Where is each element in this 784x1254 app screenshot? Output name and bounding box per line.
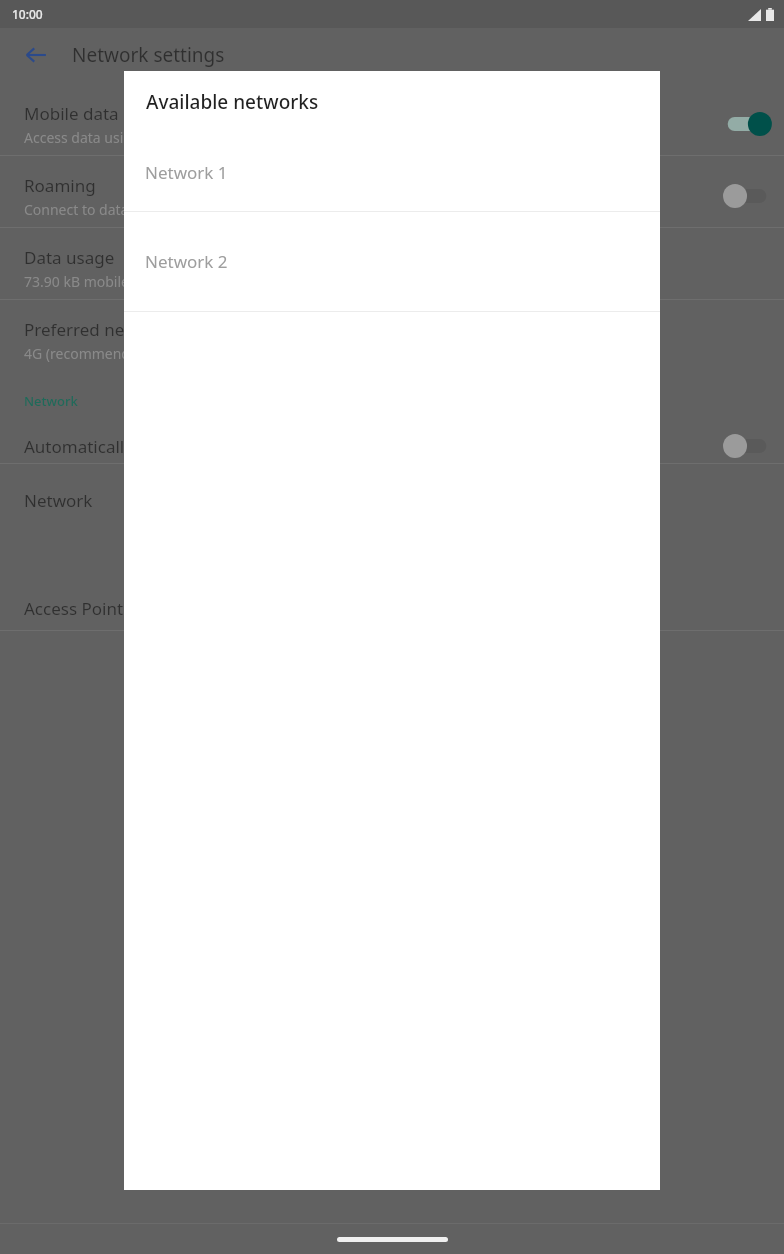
staticText: Connect to data services when roaming: [24, 200, 284, 219]
staticText: Network: [24, 392, 78, 410]
button[interactable]: Access Point Names: [0, 586, 784, 630]
button[interactable]: Network 2: [124, 212, 660, 311]
staticText: Preferred network type: [24, 318, 210, 341]
button[interactable]: Mobile data: [0, 96, 784, 152]
staticText: Available networks: [146, 89, 319, 115]
staticText: Network: [24, 489, 93, 512]
staticText: Data usage: [24, 246, 115, 269]
staticText: 4G (recommended): [24, 344, 151, 363]
staticText: Roaming: [24, 174, 96, 197]
button[interactable]: Toggle: [710, 424, 784, 468]
staticText: Access data using mobile network: [24, 128, 248, 147]
staticText: Network 1: [145, 161, 228, 184]
button[interactable]: Data usage: [0, 240, 784, 296]
button[interactable]: Preferred network type: [0, 312, 784, 368]
button[interactable]: Back: [14, 33, 58, 77]
button[interactable]: Toggle: [710, 102, 784, 146]
staticText: Access Point Names: [24, 597, 184, 620]
button[interactable]: Network: [0, 478, 784, 522]
button[interactable]: Automatically select network: [0, 424, 784, 468]
staticText: Network settings: [72, 42, 225, 68]
button[interactable]: Network 1: [124, 133, 660, 211]
staticText: Mobile data: [24, 102, 119, 125]
staticText: 73.90 kB mobile data used: [24, 272, 198, 291]
staticText: Network 2: [145, 250, 228, 273]
staticText: 10:00: [12, 6, 43, 22]
button[interactable]: Roaming: [0, 168, 784, 224]
button[interactable]: Toggle: [710, 174, 784, 218]
staticText: Automatically select network: [24, 435, 254, 458]
